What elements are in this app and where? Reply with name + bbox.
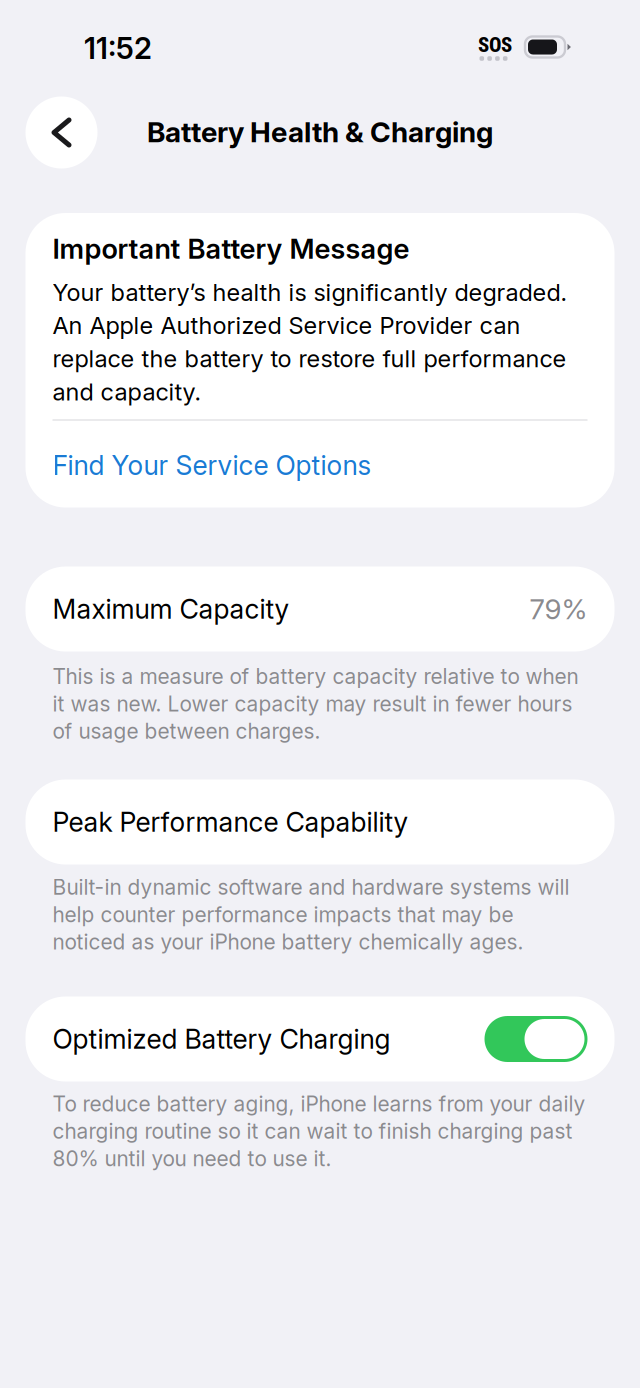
staticText: 79% [529,592,587,626]
staticText: Built-in dynamic software and hardware s… [52,874,569,954]
button[interactable]: Peak Performance Capability [25,779,614,864]
button[interactable]: Optimized Battery Charging [25,996,614,1081]
staticText: This is a measure of battery capacity re… [52,664,578,744]
staticText: SOS [478,33,512,57]
staticText: To reduce battery aging, iPhone learns f… [52,1091,585,1171]
button[interactable]: Maximum Capacity [25,566,614,651]
staticText: Important Battery Message [52,232,409,265]
staticText: Peak Performance Capability [52,806,408,838]
button[interactable]: Back [25,96,97,168]
button[interactable]: Find Your Service Options [52,421,614,508]
staticText: Optimized Battery Charging [52,1023,390,1055]
staticText: Battery Health & Charging [147,115,493,149]
staticText: Your battery’s health is significantly d… [52,278,566,406]
staticText: Find Your Service Options [52,449,371,482]
staticText: 11:52 [84,30,152,66]
staticText: Maximum Capacity [52,593,289,625]
